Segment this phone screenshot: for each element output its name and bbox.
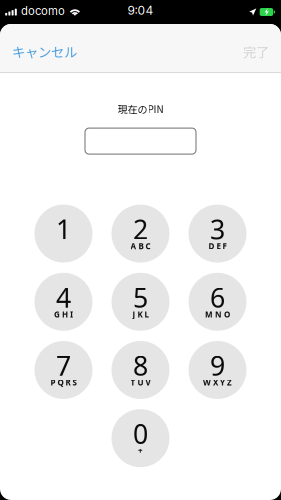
staticText: 9 xyxy=(210,348,225,383)
staticText: + xyxy=(138,445,143,456)
button[interactable]: 5 xyxy=(111,273,169,331)
staticText: 3 xyxy=(210,211,225,247)
staticText: J K L xyxy=(132,309,148,320)
button[interactable]: 0 xyxy=(111,409,169,467)
button[interactable]: 2 xyxy=(111,205,169,263)
button[interactable]: 完了 xyxy=(233,24,281,72)
button[interactable]: 8 xyxy=(111,341,169,399)
staticText: 1 xyxy=(56,211,71,247)
staticText: T U V xyxy=(130,377,150,388)
button[interactable]: 7 xyxy=(34,341,92,399)
staticText: 9:04 xyxy=(127,3,153,18)
staticText: 完了 xyxy=(243,42,269,61)
button[interactable]: 3 xyxy=(188,205,246,263)
staticText: W X Y Z xyxy=(203,377,232,388)
staticText: docomo xyxy=(21,4,65,18)
staticText: G H I xyxy=(54,309,73,320)
staticText: 現在のPIN xyxy=(117,102,163,116)
button[interactable]: 6 xyxy=(188,273,246,331)
staticText: 0 xyxy=(133,416,148,451)
button[interactable]: キャンセル xyxy=(0,24,87,72)
staticText: M N O xyxy=(205,309,230,320)
button[interactable]: 1 xyxy=(34,205,92,263)
staticText: P Q R S xyxy=(50,377,76,388)
staticText: 5 xyxy=(133,280,148,315)
button[interactable]: 4 xyxy=(34,273,92,331)
button[interactable]: 9 xyxy=(188,341,246,399)
staticText: キャンセル xyxy=(12,42,77,61)
staticText: 4 xyxy=(56,280,71,315)
staticText: 2 xyxy=(133,211,148,247)
staticText: D E F xyxy=(208,241,226,251)
staticText: 8 xyxy=(133,348,148,383)
staticText: A B C xyxy=(130,241,150,251)
staticText: 6 xyxy=(210,280,225,315)
staticText: 7 xyxy=(56,348,71,383)
